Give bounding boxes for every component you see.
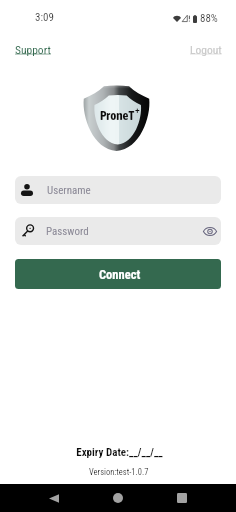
staticText: Logout <box>190 43 222 56</box>
button[interactable]: Password <box>15 217 221 245</box>
button[interactable]: Support <box>13 41 53 58</box>
staticText: + <box>135 105 140 115</box>
staticText: Support <box>15 43 51 56</box>
button[interactable]: Username <box>15 176 221 204</box>
button[interactable]: Connect <box>15 259 221 289</box>
button[interactable]: Logout <box>188 41 224 58</box>
staticText: 88% <box>200 12 218 25</box>
button[interactable]: Recent apps <box>166 484 198 512</box>
staticText: 3:09 <box>35 11 54 24</box>
staticText: Expiry Date:__/__/__ <box>76 446 163 459</box>
button[interactable]: Show password <box>202 224 217 239</box>
staticText: Version:test-1.0.7 <box>89 467 149 477</box>
button[interactable]: Home <box>102 484 134 512</box>
staticText: ProneT <box>100 108 135 123</box>
button[interactable]: Back <box>38 484 70 512</box>
staticText: Password <box>46 225 89 238</box>
staticText: Connect <box>99 267 141 282</box>
staticText: Username <box>47 184 91 197</box>
